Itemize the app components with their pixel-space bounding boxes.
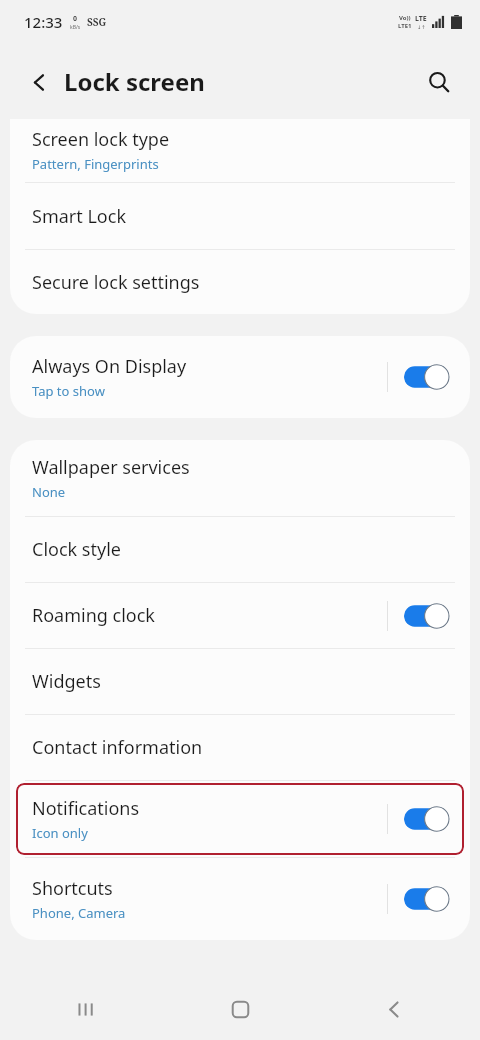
staticText: ↓↑	[417, 24, 426, 30]
button[interactable]: Smart Lock	[10, 183, 470, 249]
button[interactable]: Home	[216, 985, 264, 1033]
staticText: Tap to show	[32, 382, 105, 400]
button[interactable]: Always On Display	[10, 336, 470, 418]
button[interactable]: Toggle on	[404, 806, 450, 832]
staticText: Pattern, Fingerprints	[32, 155, 159, 173]
button[interactable]: Wallpaper services	[10, 440, 470, 516]
button[interactable]: Screen lock type	[10, 119, 470, 182]
staticText: Wallpaper services	[32, 455, 190, 480]
staticText: Shortcuts	[32, 876, 113, 901]
staticText: Notifications	[32, 796, 140, 821]
button[interactable]: Secure lock settings	[10, 250, 470, 314]
staticText: SSG	[87, 15, 107, 29]
staticText: LTE	[415, 14, 427, 24]
button[interactable]: Contact information	[10, 715, 470, 780]
button[interactable]: Recents	[62, 985, 110, 1033]
staticText: kB/s	[70, 24, 81, 31]
staticText: None	[32, 483, 66, 501]
button[interactable]: Clock style	[10, 517, 470, 582]
staticText: Clock style	[32, 537, 121, 562]
button[interactable]: Notifications	[16, 783, 464, 855]
staticText: LTE1	[398, 22, 412, 30]
button[interactable]: Back	[370, 985, 418, 1033]
button[interactable]: Toggle on	[404, 886, 450, 912]
staticText: Always On Display	[32, 354, 187, 379]
staticText: Screen lock type	[32, 127, 170, 152]
button[interactable]: Roaming clock	[10, 583, 470, 648]
staticText: Smart Lock	[32, 204, 126, 229]
staticText: Vo))	[399, 14, 411, 22]
button[interactable]: Search	[416, 59, 462, 105]
button[interactable]: Toggle on	[404, 364, 450, 390]
staticText: Roaming clock	[32, 603, 155, 628]
staticText: Phone, Camera	[32, 904, 126, 922]
staticText: 12:33	[24, 12, 63, 32]
staticText: Widgets	[32, 669, 101, 694]
staticText: 0	[73, 14, 78, 24]
button[interactable]: Shortcuts	[10, 858, 470, 940]
staticText: Contact information	[32, 735, 203, 760]
staticText: Lock screen	[64, 65, 205, 98]
button[interactable]: Widgets	[10, 649, 470, 714]
button[interactable]: Back	[16, 59, 62, 105]
button[interactable]: Toggle on	[404, 603, 450, 629]
staticText: Secure lock settings	[32, 270, 200, 295]
staticText: Icon only	[32, 824, 88, 842]
